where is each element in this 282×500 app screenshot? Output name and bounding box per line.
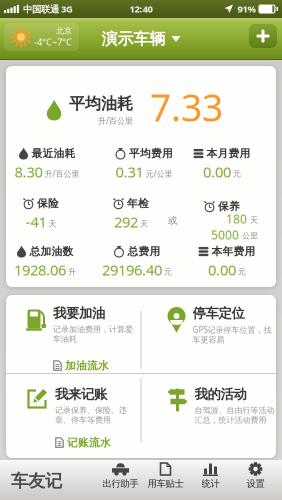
button[interactable]: 我的活动 [141,374,276,458]
staticText: 演示车辆 [101,29,165,49]
staticText: 本年费用 [211,245,255,258]
staticText: 292 [114,212,138,232]
button[interactable]: 我来记账 [6,374,140,458]
staticText: 我来记账 [55,386,107,402]
staticText: 12:40 [129,3,152,15]
staticText: 保养 [218,200,240,213]
staticText: -4°C~7°C [34,36,72,48]
staticText: 元 [164,267,172,277]
button[interactable]: 统计 [188,460,233,500]
staticText: 记账流水 [67,436,111,449]
staticText: 升 [68,267,76,277]
staticText: 天 [140,219,148,229]
staticText: 最近油耗 [31,147,75,160]
button[interactable]: 选择车辆 [101,29,180,49]
staticText: 元 [233,169,241,179]
staticText: 总加油数 [29,245,73,258]
staticText: 用车贴士 [147,478,183,489]
button[interactable]: 停车定位 [141,295,276,373]
staticText: 91% [237,3,255,15]
staticText: 自驾游、自由行等活动 [194,405,274,415]
staticText: 7.33 [150,82,223,132]
staticText: 北京 [56,26,72,36]
button[interactable]: 设置 [233,460,278,500]
staticText: 保险 [37,197,59,210]
staticText: 加油流水 [65,359,109,372]
staticText: 统计 [201,478,219,489]
button[interactable]: 用车贴士 [143,460,188,500]
button[interactable]: 北京天气 [4,23,79,51]
staticText: 5000 [211,227,239,243]
staticText: 汇总，统计活动费用 [194,415,266,425]
button[interactable]: 添加车辆 [249,24,277,48]
staticText: 0.00 [208,260,236,280]
staticText: 或 [168,215,177,226]
staticText: 8.30 [14,162,42,182]
staticText: 我的活动 [194,386,246,402]
button[interactable]: 加油流水 [53,359,109,372]
staticText: 0.00 [203,162,231,182]
staticText: 车更容易 [192,335,224,345]
staticText: 中国联通 3G [23,3,73,15]
staticText: 记录加油费用，计算爱 [53,324,133,334]
staticText: 设置 [246,478,264,489]
staticText: 1928.06 [14,260,66,280]
staticText: 我要加油 [53,305,105,321]
staticText: 总费用 [127,245,160,258]
staticText: 车油耗 [53,334,77,344]
button[interactable]: 出行助手 [98,460,143,500]
staticText: 0.31 [115,162,143,182]
staticText: 车友记 [11,470,62,492]
staticText: 平均油耗 [69,94,133,114]
staticText: 天 [250,215,258,225]
staticText: 出行助手 [102,478,138,489]
staticText: 平均费用 [129,147,173,160]
staticText: 年检 [127,197,149,210]
staticText: 元 [238,267,246,277]
staticText: GPS记录停车位置，找 [192,324,271,335]
staticText: 升/百公里 [44,168,79,179]
staticText: 公里 [242,231,258,241]
button[interactable]: 我要加油 [6,295,140,373]
staticText: 180 [226,211,247,227]
staticText: 天 [48,219,56,229]
button[interactable]: 记账流水 [55,436,111,449]
staticText: 元/公里 [145,168,172,179]
staticText: 升/百公里 [98,115,133,126]
staticText: -41 [25,212,46,232]
staticText: 章、停车等费用 [55,415,111,425]
staticText: 记录保养、保险、违 [55,405,127,415]
staticText: 本月费用 [206,147,250,160]
staticText: 停车定位 [192,305,244,321]
staticText: 29196.40 [102,260,162,280]
